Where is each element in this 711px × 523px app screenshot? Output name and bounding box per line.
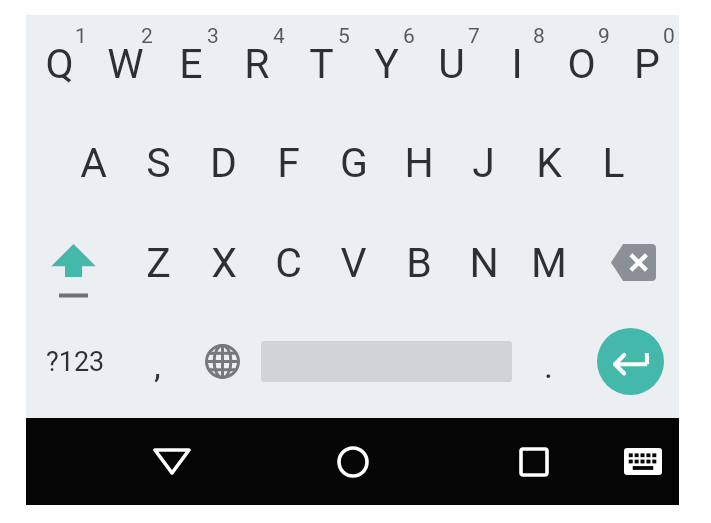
staticText: 7 xyxy=(468,24,480,49)
button[interactable]: E xyxy=(158,15,224,112)
staticText: . xyxy=(544,346,553,386)
staticText: C xyxy=(275,239,302,287)
button[interactable]: Z xyxy=(125,212,191,312)
button[interactable]: ?123 xyxy=(26,312,125,411)
staticText: 9 xyxy=(598,24,610,49)
staticText: K xyxy=(536,139,562,187)
staticText: 6 xyxy=(403,24,415,49)
button[interactable]: Change keyboard language xyxy=(190,312,255,411)
button[interactable]: G xyxy=(321,112,386,212)
staticText: Z xyxy=(146,239,171,287)
button[interactable]: Y xyxy=(354,15,419,112)
button[interactable]: F xyxy=(256,112,321,212)
staticText: D xyxy=(210,139,237,187)
button[interactable]: P xyxy=(614,15,679,112)
button[interactable]: Q xyxy=(26,15,92,112)
button[interactable]: Home xyxy=(301,418,405,505)
button[interactable]: Recent apps xyxy=(482,418,586,505)
staticText: L xyxy=(602,139,625,187)
button[interactable]: I xyxy=(484,15,549,112)
staticText: N xyxy=(469,239,499,287)
staticText: 1 xyxy=(75,24,87,49)
staticText: 3 xyxy=(207,24,219,49)
staticText: J xyxy=(472,139,495,187)
staticText: G xyxy=(340,139,368,187)
staticText: R xyxy=(244,40,270,88)
button[interactable]: Back xyxy=(120,418,224,505)
button[interactable]: M xyxy=(516,212,581,312)
button[interactable]: C xyxy=(256,212,321,312)
staticText: A xyxy=(80,139,107,187)
staticText: 5 xyxy=(338,24,350,49)
staticText: I xyxy=(511,40,523,88)
button[interactable]: T xyxy=(289,15,354,112)
button[interactable]: Enter xyxy=(597,328,664,395)
button[interactable]: N xyxy=(451,212,516,312)
staticText: 8 xyxy=(533,24,545,49)
staticText: H xyxy=(404,139,434,187)
staticText: B xyxy=(406,239,432,287)
button[interactable]: O xyxy=(549,15,614,112)
button[interactable]: Backspace xyxy=(600,212,666,312)
staticText: 4 xyxy=(273,24,285,49)
button[interactable]: A xyxy=(60,112,126,212)
staticText: Y xyxy=(374,40,399,88)
staticText: X xyxy=(211,239,237,287)
button[interactable]: V xyxy=(321,212,386,312)
button[interactable]: Shift xyxy=(26,212,125,312)
staticText: W xyxy=(107,40,144,88)
staticText: V xyxy=(340,239,367,287)
button[interactable]: D xyxy=(191,112,256,212)
staticText: F xyxy=(277,139,300,187)
staticText: 0 xyxy=(663,24,675,49)
button[interactable]: U xyxy=(419,15,484,112)
button[interactable]: , xyxy=(125,312,190,411)
button[interactable]: B xyxy=(386,212,451,312)
staticText: O xyxy=(567,40,596,88)
button[interactable]: L xyxy=(581,112,646,212)
staticText: S xyxy=(146,139,171,187)
button[interactable]: . xyxy=(516,312,581,411)
staticText: U xyxy=(438,40,465,88)
button[interactable]: S xyxy=(126,112,191,212)
button[interactable]: R xyxy=(224,15,289,112)
staticText: Q xyxy=(45,40,74,88)
staticText: M xyxy=(531,239,567,287)
button[interactable]: W xyxy=(92,15,158,112)
staticText: , xyxy=(154,346,161,386)
button[interactable]: H xyxy=(386,112,451,212)
staticText: 2 xyxy=(141,24,153,49)
button[interactable]: X xyxy=(191,212,256,312)
staticText: P xyxy=(634,40,660,88)
button[interactable]: K xyxy=(516,112,581,212)
button[interactable]: Switch keyboard xyxy=(612,418,674,505)
staticText: ?123 xyxy=(46,346,105,378)
button[interactable]: J xyxy=(451,112,516,212)
staticText: E xyxy=(179,40,203,88)
staticText: T xyxy=(309,40,334,88)
